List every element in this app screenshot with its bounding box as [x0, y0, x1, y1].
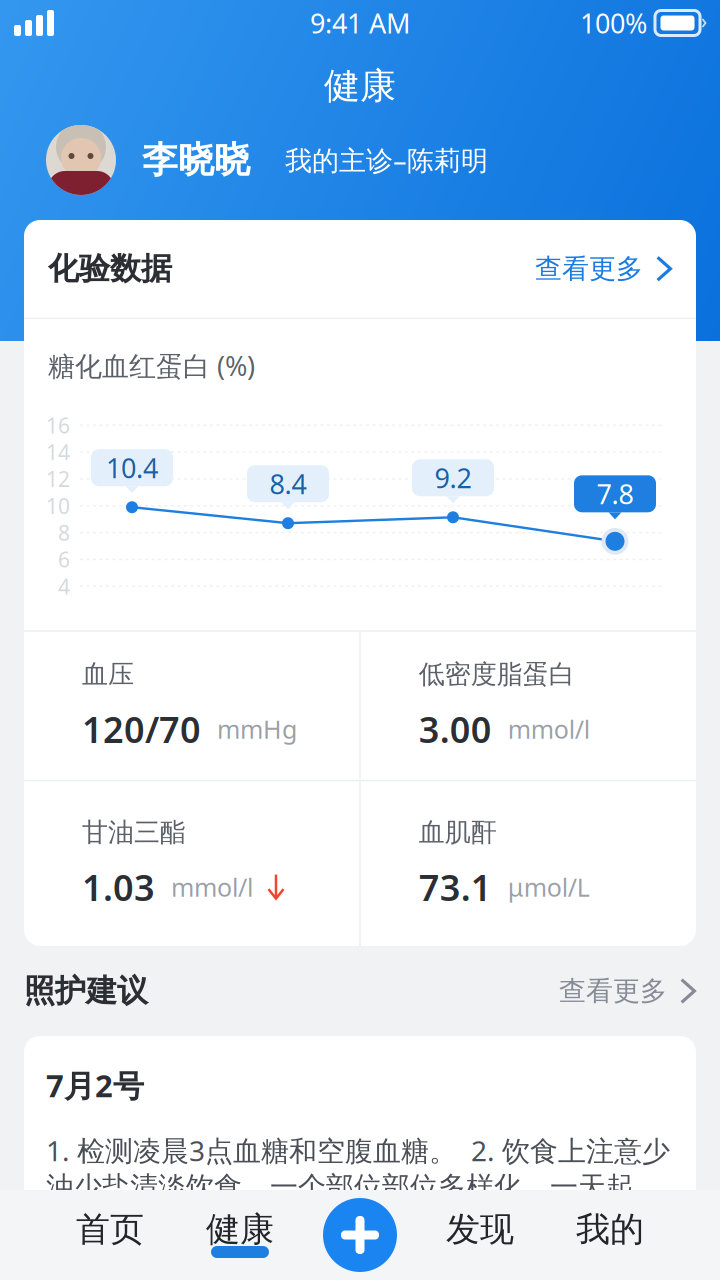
staticText: 9.2 [434, 459, 471, 496]
staticText: 查看更多 [559, 974, 667, 1008]
staticText: 我的 [576, 1208, 644, 1251]
staticText: 发现 [446, 1208, 514, 1251]
staticText: 120/70 [82, 705, 201, 754]
staticText: 血肌酐 [419, 816, 497, 849]
staticText: 6 [58, 545, 70, 574]
staticText: 10 [46, 491, 70, 520]
staticText: 1. 检测凌晨3点血糖和空腹血糖。 2. 饮食上注意少油少盐清淡饮食，一个部位部… [46, 1131, 670, 1205]
staticText: 8 [58, 518, 70, 547]
staticText: 7.8 [596, 475, 633, 512]
staticText: mmol/l [508, 712, 590, 746]
staticText: 10.4 [106, 449, 158, 486]
staticText: 健康 [206, 1208, 274, 1251]
staticText: 16 [46, 411, 70, 439]
button[interactable]: 健康 [175, 1190, 305, 1280]
staticText: 健康 [324, 63, 396, 109]
staticText: 血压 [82, 658, 134, 691]
staticText: 73.1 [419, 863, 492, 912]
staticText: 9:41 AM [310, 5, 410, 41]
staticText: mmHg [217, 712, 297, 746]
button[interactable]: 新增 [305, 1190, 415, 1280]
button[interactable]: 发现 [415, 1190, 545, 1280]
button[interactable]: 查看更多 [535, 244, 672, 294]
button[interactable]: 我的 [545, 1190, 675, 1280]
staticText: μmol/L [508, 870, 590, 904]
staticText: 首页 [76, 1208, 144, 1251]
button[interactable]: 首页 [45, 1190, 175, 1280]
staticText: 100% [580, 5, 647, 41]
staticText: 化验数据 [48, 249, 172, 288]
staticText: 查看更多 [535, 252, 643, 286]
staticText: 12 [46, 465, 70, 493]
staticText: 7月2号 [46, 1064, 144, 1106]
staticText: 8.4 [269, 465, 306, 502]
staticText: 我的主诊–陈莉明 [285, 142, 488, 178]
staticText: 低密度脂蛋白 [419, 658, 575, 691]
staticText: 4 [58, 572, 70, 600]
staticText: 3.00 [419, 705, 492, 754]
staticText: 李晓晓 [142, 137, 250, 183]
staticText: 14 [46, 438, 70, 466]
button[interactable]: 查看更多 [559, 966, 696, 1016]
staticText: 照护建议 [24, 971, 148, 1011]
staticText: 糖化血红蛋白 (%) [48, 347, 255, 384]
staticText: 1.03 [82, 863, 155, 912]
staticText: mmol/l [171, 870, 253, 904]
staticText: 甘油三酯 [82, 816, 186, 849]
